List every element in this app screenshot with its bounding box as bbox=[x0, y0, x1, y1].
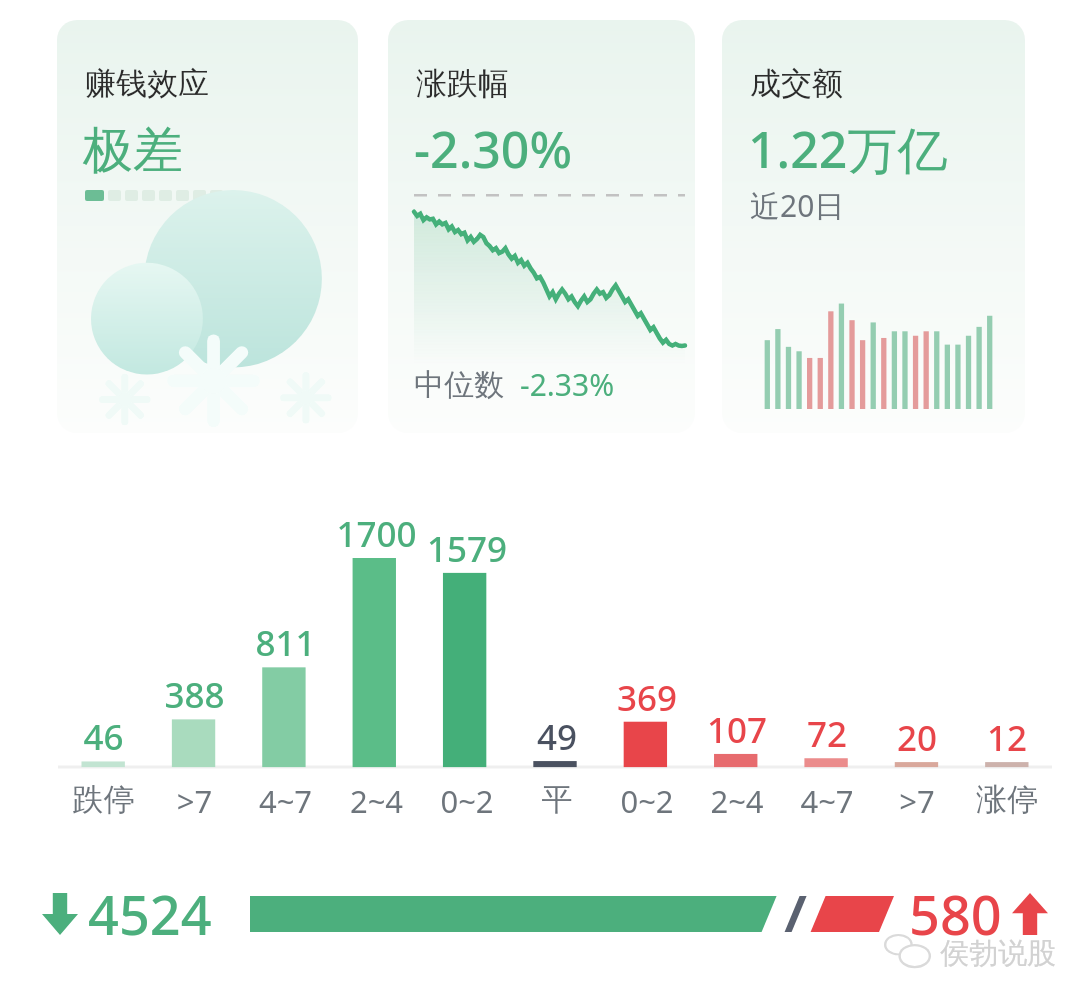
staticText: 1.22万亿 bbox=[748, 115, 948, 183]
staticText: 涨跌幅 bbox=[416, 64, 509, 103]
staticText: 涨停 bbox=[962, 780, 1052, 819]
staticText: 388 bbox=[149, 671, 240, 719]
staticText: 12 bbox=[962, 714, 1052, 762]
staticText: 4~7 bbox=[240, 780, 331, 822]
button[interactable]: 赚钱效应 bbox=[57, 20, 358, 433]
staticText: 4~7 bbox=[782, 780, 872, 822]
staticText: 369 bbox=[602, 674, 692, 722]
staticText: 成交额 bbox=[750, 64, 843, 103]
staticText: 2~4 bbox=[331, 780, 422, 822]
staticText: 20 bbox=[872, 714, 962, 762]
button[interactable]: 成交额 bbox=[722, 20, 1025, 433]
staticText: 中位数 bbox=[414, 366, 504, 404]
staticText: 平 bbox=[512, 780, 602, 819]
staticText: -2.30% bbox=[414, 115, 573, 183]
staticText: 811 bbox=[240, 619, 331, 667]
staticText: 1579 bbox=[422, 525, 512, 573]
staticText: 72 bbox=[782, 710, 872, 758]
staticText: 4524 bbox=[88, 877, 212, 951]
button[interactable]: 涨跌幅 bbox=[388, 20, 695, 433]
staticText: 跌停 bbox=[58, 780, 149, 819]
staticText: 侯勃说股 bbox=[940, 935, 1056, 972]
staticText: 2~4 bbox=[692, 780, 782, 822]
staticText: >7 bbox=[872, 780, 962, 822]
staticText: 近20日 bbox=[750, 185, 845, 226]
other: Declining count bbox=[42, 893, 78, 935]
staticText: 0~2 bbox=[422, 780, 512, 822]
staticText: 107 bbox=[692, 706, 782, 754]
staticText: 46 bbox=[58, 713, 149, 761]
staticText: -2.33% bbox=[520, 364, 615, 405]
other: Advancing count bbox=[1012, 893, 1048, 935]
other: WeChat bbox=[884, 934, 932, 972]
staticText: 赚钱效应 bbox=[85, 64, 209, 103]
staticText: 极差 bbox=[83, 119, 183, 182]
staticText: 580 bbox=[909, 877, 1002, 951]
staticText: 49 bbox=[512, 713, 602, 761]
staticText: >7 bbox=[149, 780, 240, 822]
staticText: 0~2 bbox=[602, 780, 692, 822]
staticText: 1700 bbox=[331, 510, 422, 558]
